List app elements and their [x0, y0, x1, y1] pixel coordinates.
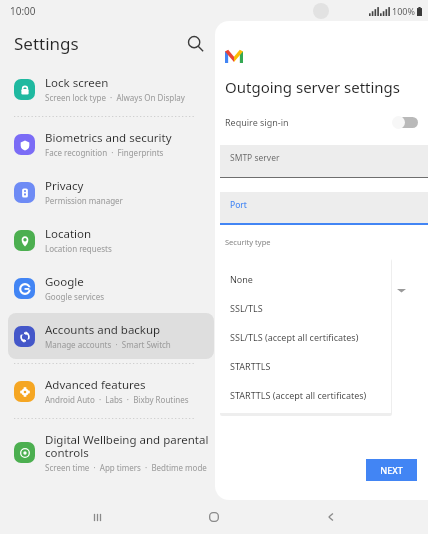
staticText: Google services [45, 291, 105, 302]
staticText: Android Auto · Labs · Bixby Routines [45, 394, 189, 405]
button[interactable]: Open security type list [397, 286, 406, 295]
button[interactable]: NEXT [366, 459, 417, 481]
button[interactable]: Location [8, 217, 214, 263]
staticText: Screen lock type · Always On Display [45, 92, 185, 103]
staticText: None [230, 273, 253, 285]
staticText: Lock screen [45, 75, 109, 91]
button[interactable]: Lock screen [8, 66, 214, 112]
staticText: Manage accounts · Smart Switch [45, 339, 171, 350]
staticText: Advanced features [45, 377, 146, 393]
staticText: Screen time · App timers · Bedtime mode [45, 462, 207, 473]
staticText: Accounts and backup [45, 322, 161, 338]
staticText: STARTTLS [230, 360, 271, 372]
button[interactable]: Recent apps [77, 500, 117, 534]
staticText: Biometrics and security [45, 130, 172, 146]
button[interactable]: SMTP server [220, 145, 428, 178]
staticText: Privacy [45, 178, 84, 194]
staticText: Google [45, 274, 84, 290]
button[interactable]: Accounts and backup [8, 313, 214, 359]
button[interactable]: STARTTLS (accept all certificates) [220, 380, 391, 409]
staticText: Face recognition · Fingerprints [45, 147, 164, 158]
staticText: Outgoing server settings [225, 77, 401, 97]
staticText: Location requests [45, 243, 112, 254]
staticText: Require sign-in [225, 116, 289, 128]
button[interactable]: STARTTLS [220, 351, 391, 380]
staticText: Permission manager [45, 195, 123, 206]
button[interactable]: Google [8, 265, 214, 311]
button[interactable]: SSL/TLS (accept all certificates) [220, 322, 391, 351]
button[interactable]: Require sign-in [220, 111, 428, 133]
staticText: SMTP server [230, 152, 280, 164]
button[interactable]: Port [220, 192, 428, 225]
button[interactable]: Privacy [8, 169, 214, 215]
button[interactable]: Home [194, 500, 234, 534]
button[interactable]: Advanced features [8, 368, 214, 414]
staticText: Port [230, 199, 247, 211]
button[interactable]: Biometrics and security [8, 121, 214, 167]
button[interactable]: None [220, 264, 391, 293]
button[interactable]: SSL/TLS [220, 293, 391, 322]
button[interactable]: Back [311, 500, 351, 534]
staticText: Security type [225, 237, 271, 247]
button[interactable]: Digital Wellbeing and parental controls [8, 423, 214, 481]
staticText: Settings [14, 32, 79, 55]
staticText: SSL/TLS [230, 302, 263, 314]
staticText: SSL/TLS (accept all certificates) [230, 331, 359, 343]
staticText: 10:00 [10, 4, 36, 18]
button[interactable]: Search [180, 28, 210, 58]
staticText: STARTTLS (accept all certificates) [230, 389, 367, 401]
staticText: 100% [392, 5, 415, 17]
staticText: Location [45, 226, 92, 242]
staticText: Digital Wellbeing and parental controls [45, 432, 209, 461]
staticText: NEXT [380, 464, 403, 476]
